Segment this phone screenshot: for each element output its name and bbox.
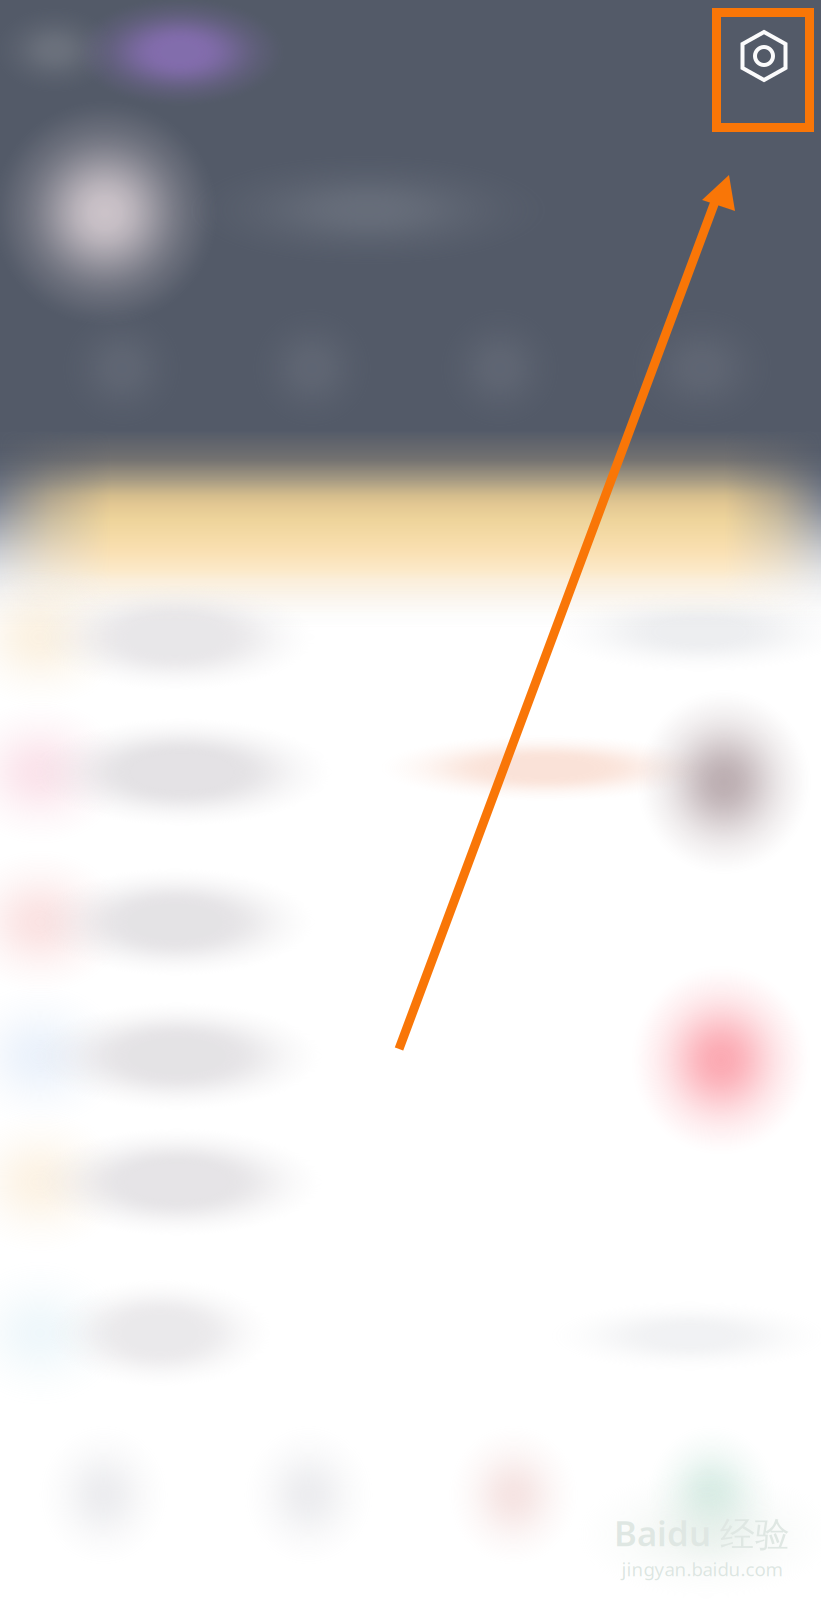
button[interactable]: Coupons <box>0 706 821 838</box>
staticText: jingyan.baidu.com <box>621 1557 782 1581</box>
button[interactable]: Settings <box>0 1267 821 1399</box>
button[interactable]: Home <box>1 1425 206 1575</box>
button[interactable]: Me <box>609 1425 814 1575</box>
button[interactable]: Discover <box>206 1425 411 1575</box>
button[interactable]: Messages <box>411 1425 616 1575</box>
button[interactable]: Favourites <box>0 856 821 988</box>
button[interactable]: Wallet <box>0 990 821 1122</box>
button[interactable]: Settings <box>716 12 809 127</box>
button[interactable]: Points <box>0 1116 821 1248</box>
staticText: Baidu 经验 <box>614 1510 790 1556</box>
button[interactable]: Orders <box>0 571 821 703</box>
